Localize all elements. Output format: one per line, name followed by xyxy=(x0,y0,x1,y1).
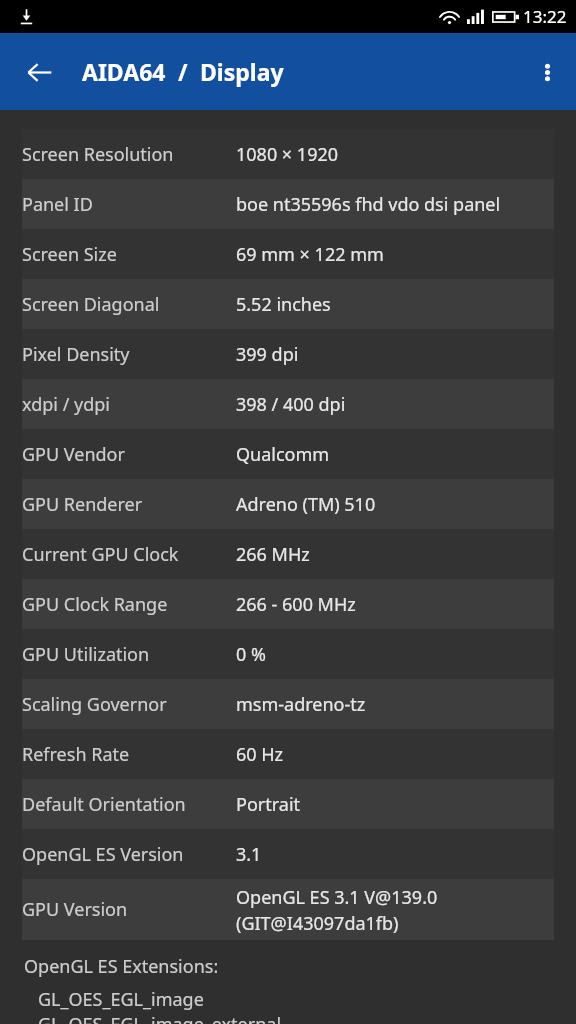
button[interactable]: Screen Size xyxy=(22,229,554,279)
button[interactable]: Screen Resolution xyxy=(22,129,554,179)
staticText: Screen Diagonal xyxy=(22,292,160,317)
staticText: Panel ID xyxy=(22,192,93,217)
staticText: Display xyxy=(200,56,284,87)
button[interactable]: GPU Utilization xyxy=(22,629,554,679)
staticText: Scaling Governor xyxy=(22,692,167,717)
staticText: GL_OES_EGL_image_external xyxy=(38,1012,282,1024)
staticText: Adreno (TM) 510 xyxy=(236,492,376,517)
staticText: GPU Utilization xyxy=(22,642,150,667)
staticText: GPU Vendor xyxy=(22,442,125,467)
staticText: 60 Hz xyxy=(236,742,284,767)
button[interactable]: Pixel Density xyxy=(22,329,554,379)
staticText: / xyxy=(178,56,188,87)
staticText: 13:22 xyxy=(523,5,567,28)
staticText: 399 dpi xyxy=(236,342,299,367)
staticText: OpenGL ES Version xyxy=(22,842,184,867)
button[interactable]: GPU Clock Range xyxy=(22,579,554,629)
staticText: xdpi / ydpi xyxy=(22,392,110,417)
button[interactable]: More options xyxy=(521,46,573,98)
staticText: 398 / 400 dpi xyxy=(236,392,346,417)
staticText: GL_OES_EGL_image xyxy=(38,987,204,1012)
staticText: GPU Version xyxy=(22,897,128,922)
button[interactable]: Back xyxy=(12,45,66,99)
staticText: 266 - 600 MHz xyxy=(236,592,356,617)
button[interactable]: Current GPU Clock xyxy=(22,529,554,579)
staticText: Current GPU Clock xyxy=(22,542,179,567)
staticText: Default Orientation xyxy=(22,792,186,817)
button[interactable]: OpenGL ES Version xyxy=(22,829,554,879)
staticText: Qualcomm xyxy=(236,442,330,467)
button[interactable]: Panel ID xyxy=(22,179,554,229)
staticText: 266 MHz xyxy=(236,542,310,567)
button[interactable]: GPU Vendor xyxy=(22,429,554,479)
button[interactable]: xdpi / ydpi xyxy=(22,379,554,429)
staticText: 5.52 inches xyxy=(236,292,331,317)
button[interactable]: Refresh Rate xyxy=(22,729,554,779)
button[interactable]: GPU Version xyxy=(22,879,554,940)
staticText: 69 mm × 122 mm xyxy=(236,242,384,267)
staticText: Pixel Density xyxy=(22,342,130,367)
staticText: Refresh Rate xyxy=(22,742,130,767)
staticText: OpenGL ES Extensions: xyxy=(24,954,219,979)
button[interactable]: GPU Renderer xyxy=(22,479,554,529)
staticText: boe nt35596s fhd vdo dsi panel xyxy=(236,192,501,217)
staticText: 1080 × 1920 xyxy=(236,142,339,167)
staticText: AIDA64 xyxy=(82,56,166,87)
staticText: OpenGL ES 3.1 V@139.0 (GIT@I43097da1fb) xyxy=(236,885,438,935)
staticText: 3.1 xyxy=(236,842,262,867)
staticText: Screen Resolution xyxy=(22,142,174,167)
staticText: Portrait xyxy=(236,792,301,817)
staticText: msm-adreno-tz xyxy=(236,692,366,717)
button[interactable]: Default Orientation xyxy=(22,779,554,829)
button[interactable]: Screen Diagonal xyxy=(22,279,554,329)
button[interactable]: Scaling Governor xyxy=(22,679,554,729)
staticText: GPU Renderer xyxy=(22,492,143,517)
staticText: GPU Clock Range xyxy=(22,592,168,617)
staticText: Screen Size xyxy=(22,242,117,267)
staticText: 0 % xyxy=(236,642,266,667)
